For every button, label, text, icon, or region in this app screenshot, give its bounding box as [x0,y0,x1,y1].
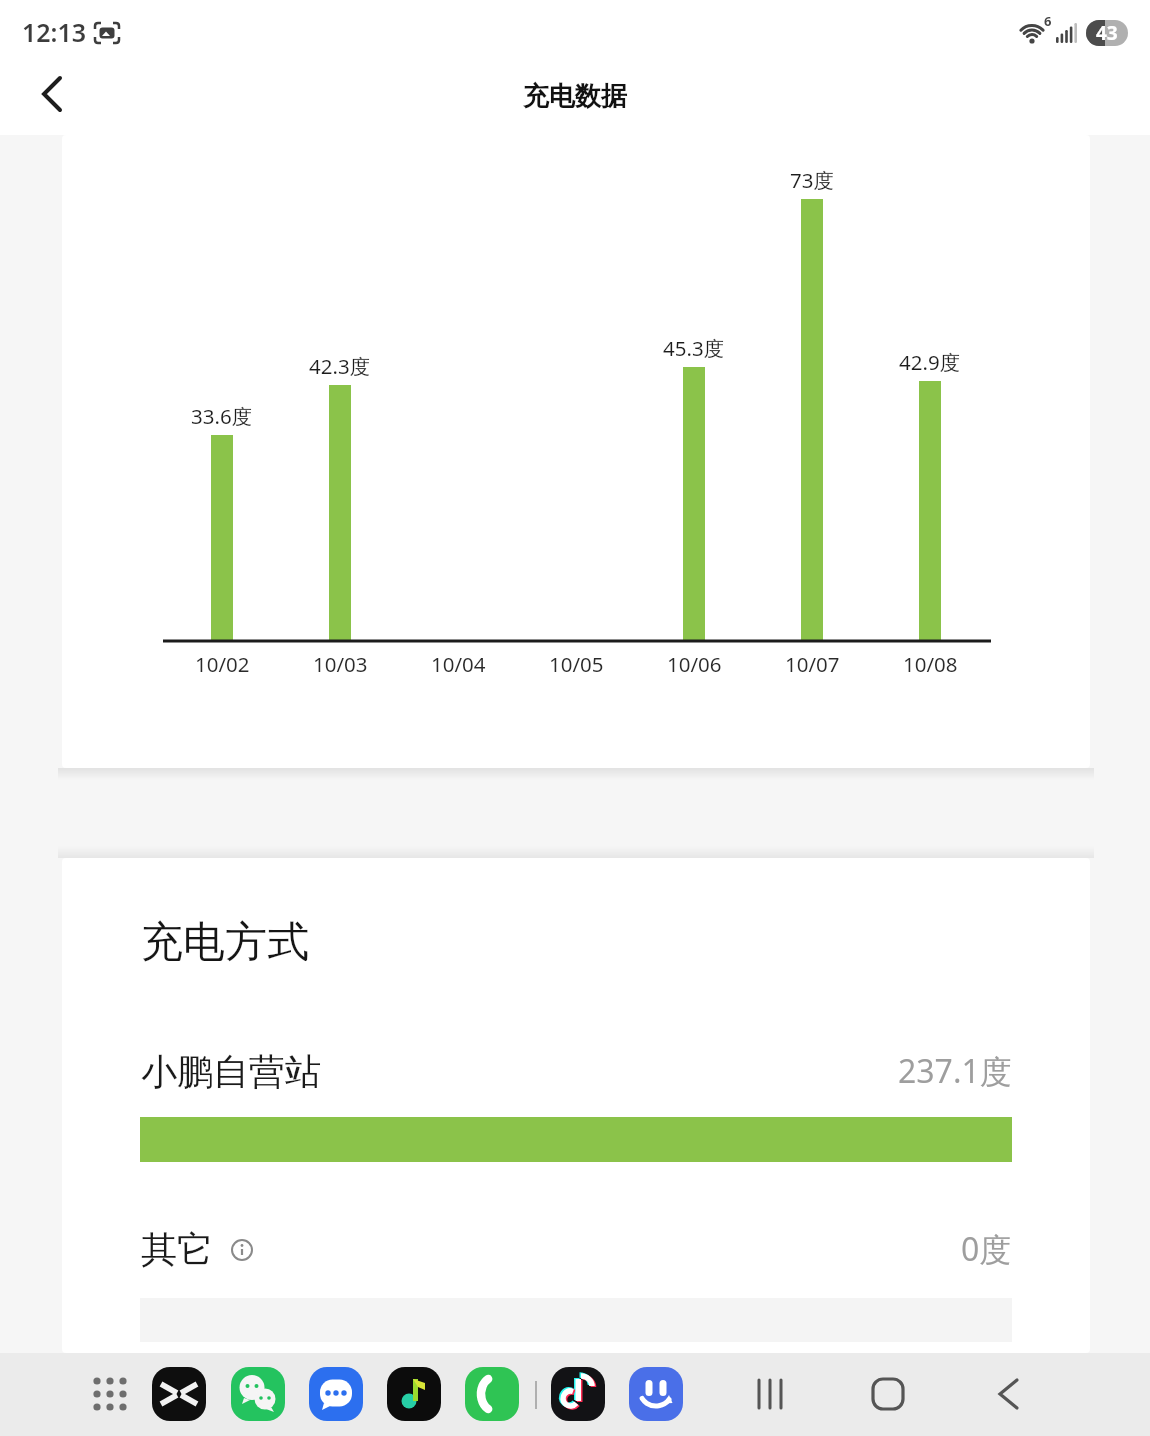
staticText: 45.3度 [663,334,725,362]
staticText: 42.3度 [309,352,371,380]
staticText: 33.6度 [191,402,253,430]
staticText: 12:13 [22,15,87,49]
staticText: 10/08 [903,650,958,678]
staticText: 43 [1096,20,1118,46]
button[interactable] [629,1367,683,1421]
button[interactable] [152,1367,206,1421]
button[interactable] [866,1372,910,1416]
button[interactable] [387,1367,441,1421]
staticText: 小鹏自营站 [141,1049,321,1094]
button[interactable] [749,1372,793,1416]
staticText: 10/07 [785,650,840,678]
button[interactable] [88,1372,132,1416]
staticText: 73度 [790,166,834,194]
staticText: 充电方式 [141,916,309,969]
staticText: 237.1度 [898,1049,1012,1093]
button[interactable] [231,1367,285,1421]
staticText: 10/03 [313,650,368,678]
staticText: 10/04 [431,650,486,678]
staticText: 其它 [141,1227,213,1272]
button[interactable] [309,1367,363,1421]
button[interactable] [24,66,80,122]
button[interactable] [987,1372,1031,1416]
staticText: 6 [1044,12,1052,30]
staticText: 10/02 [195,650,250,678]
staticText: 42.9度 [899,348,961,376]
staticText: 0度 [961,1227,1012,1271]
button[interactable] [465,1367,519,1421]
staticText: 10/05 [549,650,604,678]
staticText: 充电数据 [523,80,627,113]
staticText: 10/06 [667,650,722,678]
button[interactable] [551,1367,605,1421]
